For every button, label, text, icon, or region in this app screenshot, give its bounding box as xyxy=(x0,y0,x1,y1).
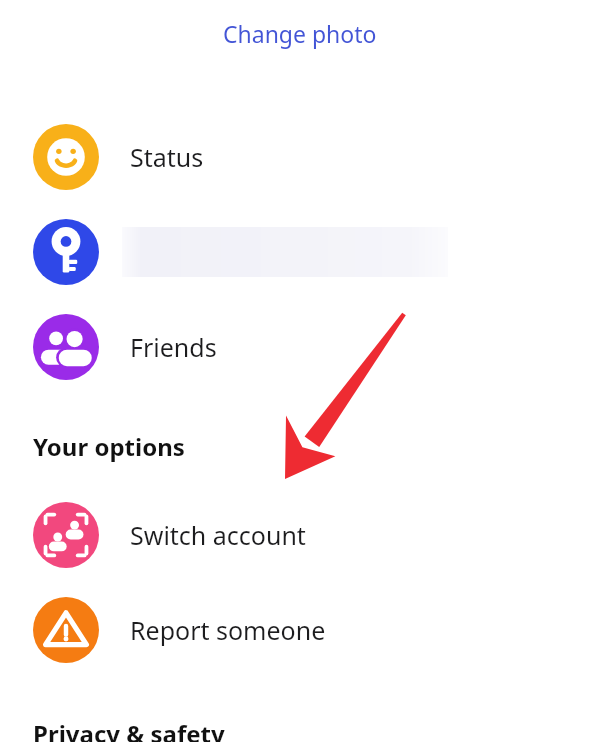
staticText: Friends xyxy=(130,330,217,364)
staticText: Status xyxy=(130,140,204,174)
staticText: Privacy & safety xyxy=(33,717,225,742)
button[interactable]: Friends xyxy=(0,299,600,394)
button[interactable]: Change photo xyxy=(213,14,387,53)
staticText: Switch account xyxy=(130,518,306,552)
button[interactable]: Status xyxy=(0,109,600,204)
button[interactable]: Switch account xyxy=(0,487,600,582)
staticText: Report someone xyxy=(130,613,326,647)
staticText: Your options xyxy=(33,430,185,463)
button[interactable]: Account key setting xyxy=(0,204,600,299)
button[interactable]: Report someone xyxy=(0,582,600,677)
staticText: Change photo xyxy=(223,18,377,49)
